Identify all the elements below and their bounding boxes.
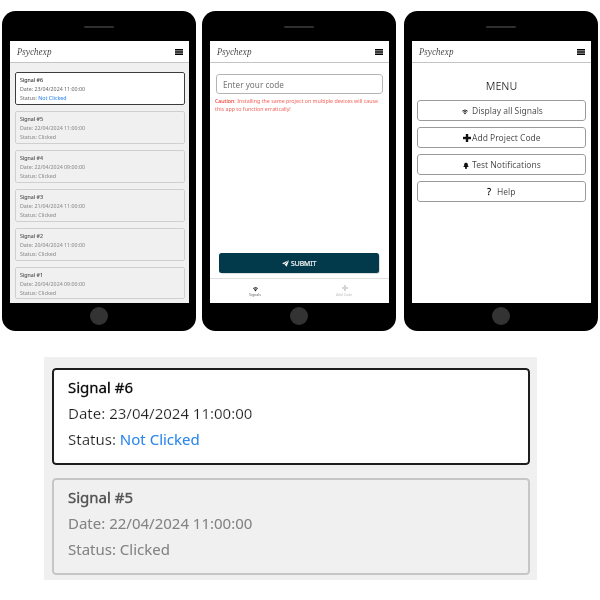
staticText: Date: 21/04/2024 11:00:00 xyxy=(20,202,86,209)
staticText: Status: Clicked xyxy=(20,289,57,296)
staticText: Signal #1 xyxy=(20,271,43,278)
button[interactable]: Signal #2 xyxy=(15,228,185,261)
staticText: Date: 22/04/2024 09:00:00 xyxy=(20,163,86,170)
staticText: Status: Clicked xyxy=(20,133,57,140)
staticText: MENU xyxy=(412,79,591,94)
staticText: Caution: Installing the same project on … xyxy=(215,97,383,112)
button[interactable]: Signal #4 xyxy=(15,150,185,183)
staticText: Add Code xyxy=(336,292,353,297)
button[interactable]: Signal #3 xyxy=(15,189,185,222)
staticText: Signal #5 xyxy=(68,487,134,507)
staticText: SUBMIT xyxy=(291,259,317,268)
staticText: Help xyxy=(497,186,516,198)
staticText: Test Notifications xyxy=(472,159,541,171)
button[interactable]: Test Notifications xyxy=(417,154,586,175)
staticText: Signal #6 xyxy=(68,377,134,397)
staticText: Status: Clicked xyxy=(20,211,57,218)
staticText: Psychexp xyxy=(419,46,454,57)
button[interactable]: Signals xyxy=(210,279,299,303)
staticText: Status: Clicked xyxy=(20,250,57,257)
button[interactable]: Add Project Code xyxy=(417,127,586,148)
staticText: Date: 20/04/2024 09:00:00 xyxy=(20,280,86,287)
staticText: Signal #2 xyxy=(20,232,43,239)
staticText: Signal #4 xyxy=(20,154,43,161)
button[interactable]: Open navigation menu xyxy=(574,45,588,59)
staticText: Date: 23/04/2024 11:00:00 xyxy=(68,403,253,423)
staticText: Signals xyxy=(249,292,261,297)
button[interactable]: Signal #5 xyxy=(15,111,185,144)
staticText: Signal #6 xyxy=(20,76,43,83)
button[interactable]: Display all Signals xyxy=(417,100,586,121)
button[interactable]: Signal #1 xyxy=(15,267,185,299)
button[interactable]: ? xyxy=(417,181,586,202)
button[interactable]: SUBMIT xyxy=(219,253,379,273)
button[interactable]: Enter your code xyxy=(216,74,383,94)
staticText: Date: 20/04/2024 11:00:00 xyxy=(20,241,86,248)
staticText: Display all Signals xyxy=(472,105,543,117)
staticText: Psychexp xyxy=(17,46,52,57)
staticText: Signal #5 xyxy=(20,115,43,122)
staticText: Status: Clicked xyxy=(68,539,170,559)
button[interactable]: Open navigation menu xyxy=(372,45,386,59)
button[interactable]: Signal #5 xyxy=(52,478,530,575)
staticText: Status: Clicked xyxy=(20,172,57,179)
staticText: Date: 22/04/2024 11:00:00 xyxy=(20,124,86,131)
button[interactable]: Add Code xyxy=(299,279,389,303)
button[interactable]: Open navigation menu xyxy=(172,45,186,59)
button[interactable]: Signal #6 xyxy=(15,72,185,105)
staticText: Enter your code xyxy=(223,79,284,90)
staticText: Date: 23/04/2024 11:00:00 xyxy=(20,85,86,92)
staticText: Status: Not Clicked xyxy=(68,429,200,449)
button[interactable]: Signal #6 xyxy=(52,368,530,465)
staticText: Psychexp xyxy=(217,46,252,57)
staticText: Signal #3 xyxy=(20,193,43,200)
staticText: ? xyxy=(487,185,492,198)
staticText: Status: Not Clicked xyxy=(20,94,67,101)
staticText: Date: 22/04/2024 11:00:00 xyxy=(68,513,253,533)
staticText: Add Project Code xyxy=(472,132,541,144)
